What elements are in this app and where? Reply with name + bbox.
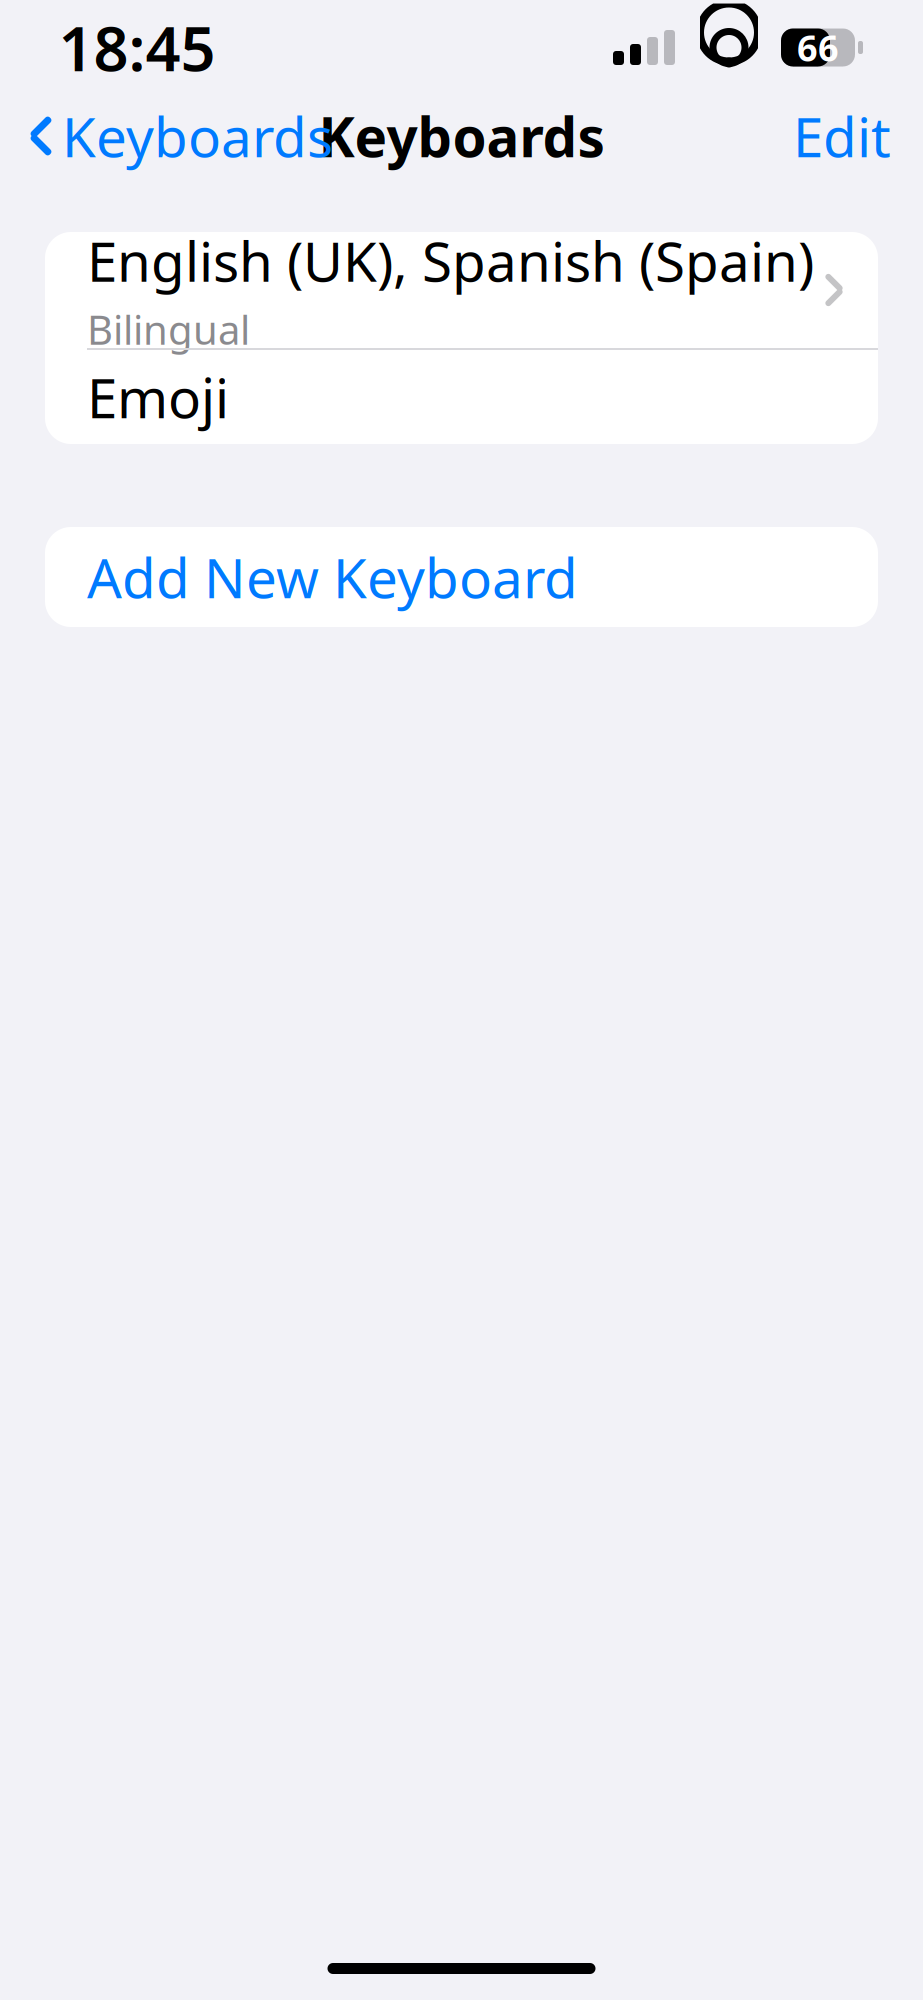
button[interactable]: English (UK), Spanish (Spain) bbox=[45, 232, 878, 348]
staticText: Emoji bbox=[87, 361, 229, 433]
staticText: Bilingual bbox=[87, 303, 250, 356]
staticText: English (UK), Spanish (Spain) bbox=[87, 224, 814, 297]
button[interactable]: Keyboards bbox=[12, 88, 351, 184]
staticText: 66 bbox=[797, 24, 839, 71]
staticText: Add New Keyboard bbox=[87, 541, 578, 613]
staticText: Keyboards bbox=[318, 100, 604, 172]
staticText: Edit bbox=[793, 100, 891, 172]
button[interactable]: Edit bbox=[773, 88, 911, 184]
staticText: Keyboards bbox=[62, 100, 333, 172]
staticText: 18:45 bbox=[58, 7, 215, 88]
button[interactable]: Emoji bbox=[45, 350, 878, 444]
button[interactable]: Add New Keyboard bbox=[45, 527, 878, 627]
